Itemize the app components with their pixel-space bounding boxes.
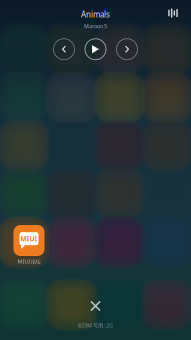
staticText: MIUI <box>20 234 37 243</box>
button[interactable]: Audio output <box>163 4 183 22</box>
staticText: MIUI论坛 <box>17 258 40 265</box>
staticText: Animals <box>81 9 110 20</box>
staticText: 833M 可用 : 2G <box>78 322 113 329</box>
button[interactable]: Next track <box>116 39 137 60</box>
staticText: Maroon 5 <box>84 23 107 30</box>
button[interactable]: MIUI <box>9 225 49 265</box>
button[interactable]: Previous track <box>53 39 74 60</box>
button[interactable]: Close <box>85 296 105 316</box>
button[interactable]: Play <box>85 39 106 60</box>
